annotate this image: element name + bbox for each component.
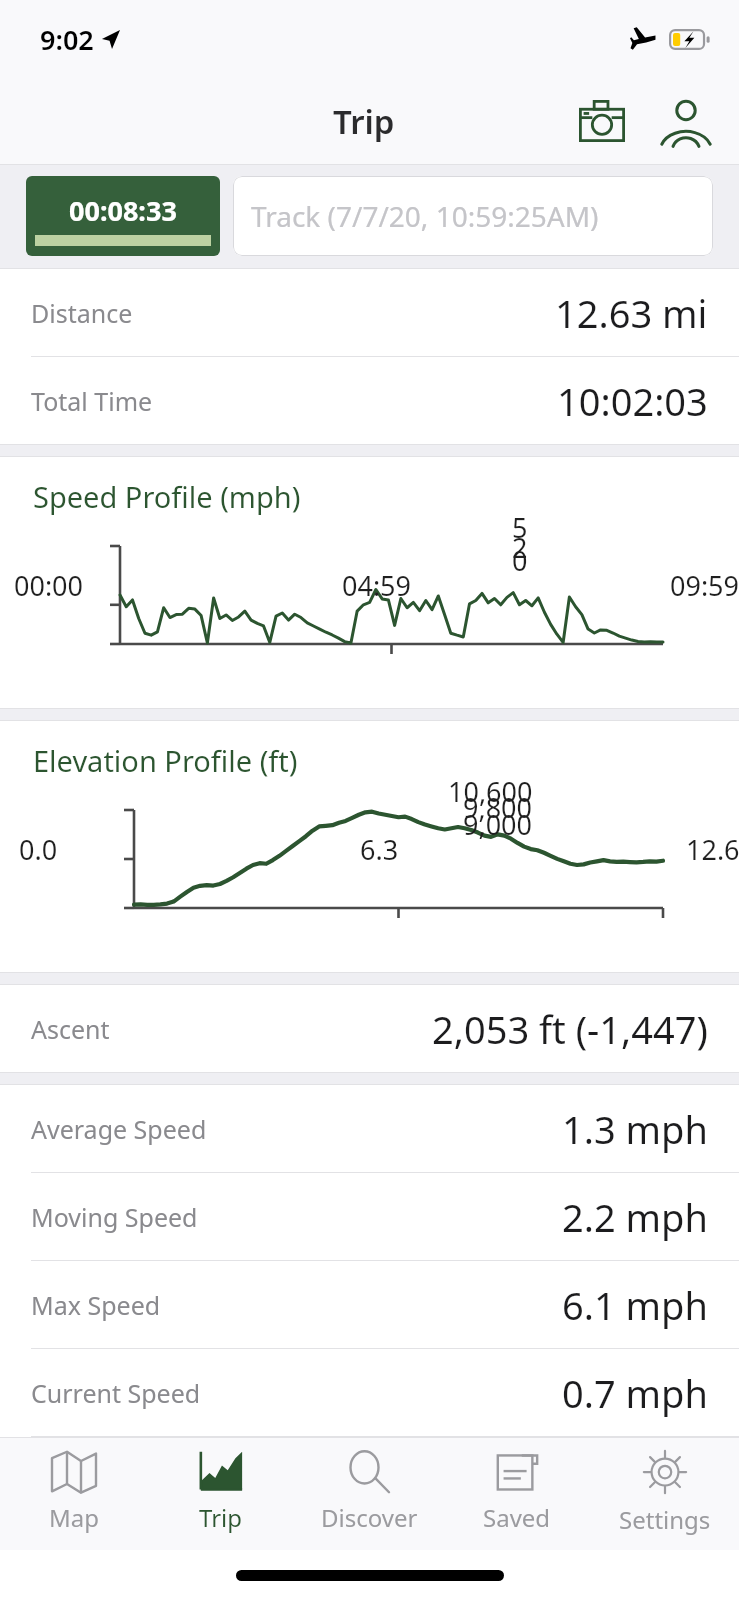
button[interactable]: Map (0, 1438, 147, 1550)
button[interactable]: 00:08:33 (26, 176, 220, 256)
staticText: Elevation Profile (ft) (33, 741, 298, 780)
staticText: 10:02:03 (557, 375, 708, 427)
button[interactable]: Locate me (655, 90, 717, 152)
staticText: Average Speed (31, 1112, 207, 1146)
staticText: Settings (619, 1503, 711, 1536)
button[interactable]: Max Speed (0, 1261, 739, 1348)
staticText: 6.1 mph (562, 1279, 708, 1331)
button[interactable]: Average Speed (0, 1085, 739, 1172)
staticText: Moving Speed (31, 1200, 198, 1234)
staticText: Distance (31, 296, 133, 330)
staticText: 2,053 ft (-1,447) (432, 1003, 708, 1055)
button[interactable]: Ascent (0, 985, 739, 1072)
button[interactable]: Saved (443, 1438, 591, 1550)
staticText: Trip (333, 99, 395, 144)
staticText: 0.0 (19, 831, 58, 868)
staticText: Max Speed (31, 1288, 161, 1322)
staticText: Trip (199, 1501, 243, 1534)
button[interactable]: Settings (591, 1438, 739, 1550)
staticText: 12.6 (686, 831, 739, 868)
button[interactable]: Discover (295, 1438, 443, 1550)
button[interactable]: Take photo (571, 90, 633, 152)
staticText: Current Speed (31, 1376, 201, 1410)
staticText: 5 (512, 509, 528, 546)
staticText: 0 (512, 542, 528, 579)
staticText: 1.3 mph (562, 1103, 708, 1155)
staticText: Track (7/7/20, 10:59:25AM) (251, 197, 599, 235)
staticText: 2 (512, 529, 528, 566)
staticText: Total Time (31, 384, 153, 418)
staticText: Ascent (31, 1012, 110, 1046)
button[interactable]: Track (7/7/20, 10:59:25AM) (233, 176, 713, 256)
button[interactable]: Distance (0, 269, 739, 356)
staticText: 9,000 (463, 806, 533, 843)
staticText: 10,600 (448, 773, 533, 810)
staticText: Speed Profile (mph) (33, 477, 301, 516)
staticText: 09:59 (670, 567, 739, 604)
staticText: 04:59 (342, 567, 412, 604)
button[interactable]: Total Time (0, 357, 739, 444)
staticText: 6.3 (360, 831, 399, 868)
staticText: 00:00 (14, 567, 84, 604)
staticText: 2.2 mph (562, 1191, 708, 1243)
staticText: 9:02 (40, 21, 94, 58)
button[interactable]: Trip (147, 1438, 295, 1550)
button[interactable]: Current Speed (0, 1349, 739, 1436)
staticText: Discover (321, 1501, 418, 1534)
staticText: 9,800 (463, 789, 533, 826)
staticText: 00:08:33 (69, 192, 177, 229)
staticText: 12.63 mi (555, 287, 708, 339)
button[interactable]: Moving Speed (0, 1173, 739, 1260)
staticText: Saved (483, 1501, 551, 1534)
staticText: Map (49, 1501, 99, 1534)
staticText: 0.7 mph (562, 1367, 708, 1419)
